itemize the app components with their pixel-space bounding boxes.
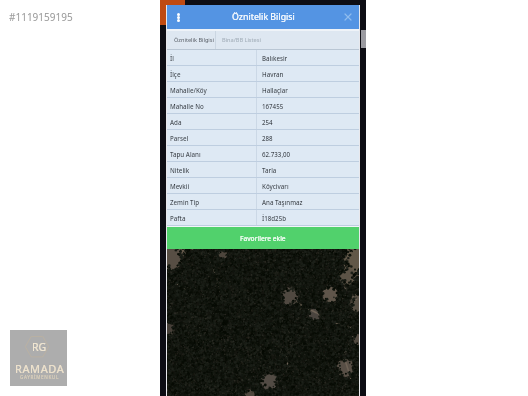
staticText: Mevkii — [170, 182, 190, 190]
staticText: Mahalle/Köy — [170, 86, 207, 94]
staticText: RAMADA — [15, 361, 65, 376]
button[interactable]: Favorilere ekle — [167, 227, 359, 249]
button[interactable]: Mevkii — [167, 178, 359, 193]
staticText: Pafta — [170, 214, 186, 222]
staticText: 254 — [262, 118, 273, 126]
staticText: Öznitelik Bilgisi — [174, 36, 214, 44]
staticText: Öznitelik Bilgisi — [232, 11, 295, 23]
button[interactable]: Nitelik — [167, 162, 359, 177]
button[interactable]: Öznitelik Bilgisi — [167, 31, 215, 49]
button[interactable]: Pafta — [167, 210, 359, 225]
button[interactable]: Tapu Alanı — [167, 146, 359, 161]
staticText: İlçe — [170, 70, 181, 78]
button[interactable]: Ada — [167, 114, 359, 129]
staticText: Ana Taşınmaz — [262, 198, 303, 206]
button[interactable]: Mahalle No — [167, 98, 359, 113]
staticText: #1119159195 — [9, 10, 73, 24]
staticText: Balıkesir — [262, 54, 288, 62]
staticText: İl — [170, 54, 174, 62]
button[interactable]: Parsel — [167, 130, 359, 145]
staticText: GAYRİMENKUL — [20, 374, 59, 380]
staticText: Mahalle No — [170, 102, 204, 110]
staticText: RG — [32, 340, 47, 354]
staticText: Nitelik — [170, 166, 190, 174]
button[interactable]: Bina/BB Listesi — [216, 31, 263, 49]
button[interactable]: Zemin Tip — [167, 194, 359, 209]
staticText: 62.733,00 — [262, 150, 291, 158]
button[interactable]: İlçe — [167, 66, 359, 81]
staticText: Favorilere ekle — [240, 234, 286, 243]
staticText: Zemin Tip — [170, 198, 200, 206]
button[interactable]: İl — [167, 50, 359, 65]
staticText: Bina/BB Listesi — [222, 36, 261, 44]
staticText: Havran — [262, 70, 284, 78]
staticText: Ada — [170, 118, 182, 126]
button[interactable]: More options — [170, 5, 186, 29]
staticText: Tapu Alanı — [170, 150, 201, 158]
staticText: Parsel — [170, 134, 189, 142]
staticText: İ18d25b — [262, 214, 287, 222]
staticText: Tarla — [262, 166, 277, 174]
button[interactable]: Close — [340, 5, 356, 29]
staticText: 288 — [262, 134, 273, 142]
button[interactable]: Mahalle/Köy — [167, 82, 359, 97]
staticText: Köycivarı — [262, 182, 289, 190]
staticText: 167455 — [262, 102, 284, 110]
staticText: Hallaçlar — [262, 86, 288, 94]
